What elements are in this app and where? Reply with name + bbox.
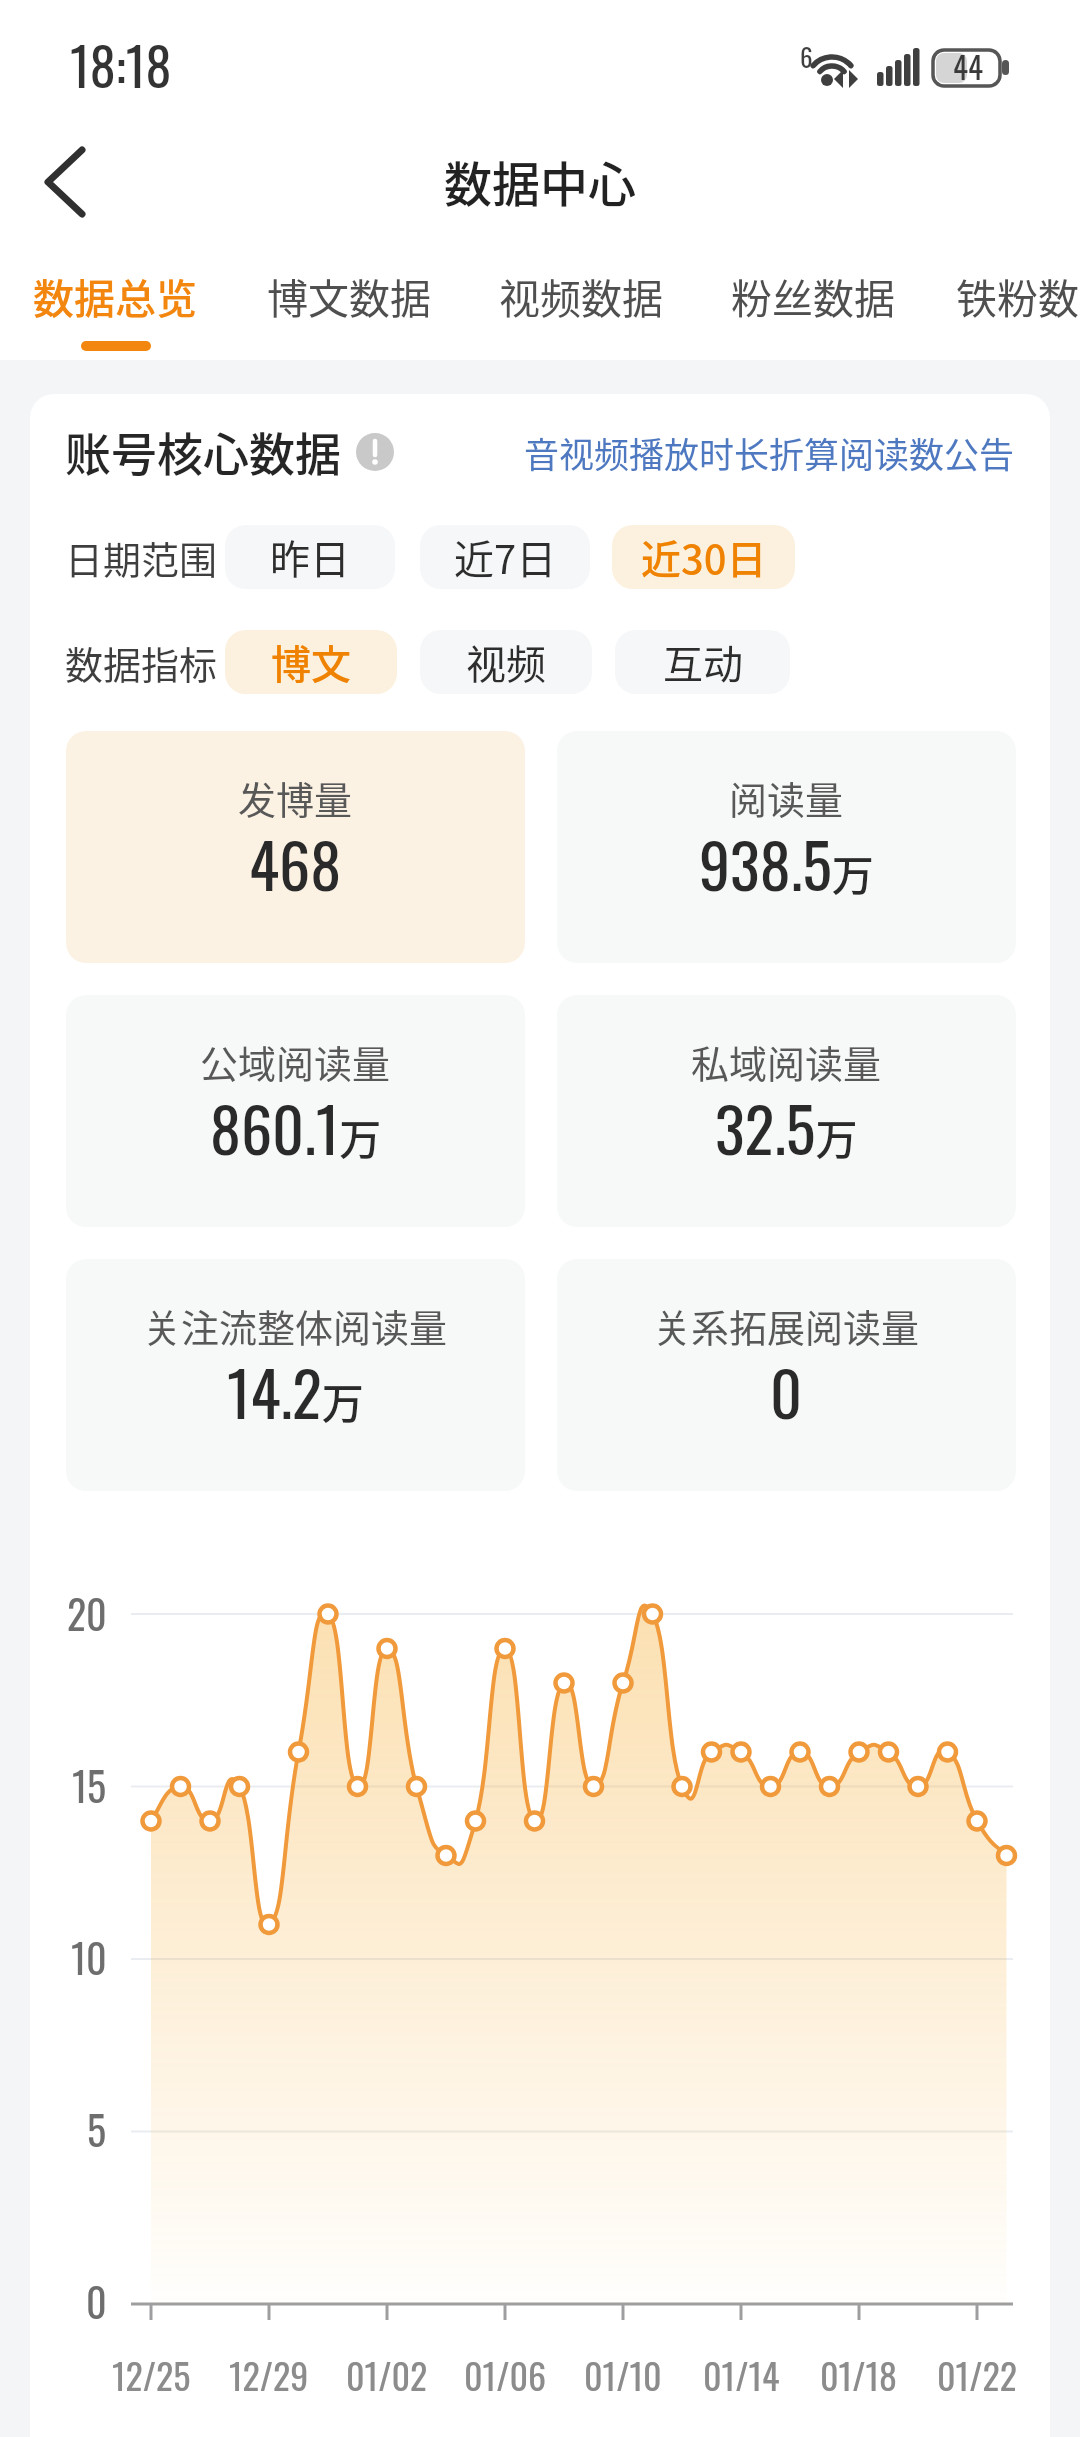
staticText: 01/22 [937,2348,1017,2401]
button[interactable]: 互动 [615,630,790,694]
staticText: 10 [71,1927,107,1986]
staticText: 01/06 [464,2348,547,2401]
staticText: 发博量 [238,770,353,825]
staticText: 博文数据 [267,266,431,325]
staticText: 32.5万 [715,1081,858,1173]
button[interactable] [26,140,110,224]
button[interactable] [66,1259,525,1491]
button[interactable]: 粉丝数据 [731,255,961,335]
button[interactable]: 近7日 [420,525,590,589]
staticText: 12/29 [229,2348,309,2401]
staticText: 01/10 [584,2348,662,2401]
staticText: 01/14 [703,2348,780,2401]
staticText: 6 [800,38,813,68]
staticText: 博文 [271,633,351,691]
staticText: 私域阅读量 [691,1034,882,1089]
staticText: 0 [86,2271,107,2330]
staticText: 数据总览 [33,266,197,325]
button[interactable]: 视频数据 [499,255,729,335]
staticText: 阅读量 [729,770,844,825]
button[interactable]: 博文 [225,630,397,694]
button[interactable] [66,731,525,963]
staticText: 昨日 [270,528,350,586]
staticText: 20 [67,1583,107,1642]
button[interactable]: 音视频播放时长折算阅读数公告 [415,417,1015,487]
staticText: 0 [770,1345,803,1437]
staticText: 12/25 [112,2348,191,2401]
staticText: 938.5万 [699,817,874,909]
staticText: 01/02 [346,2348,428,2401]
staticText: 860.1万 [210,1081,382,1173]
staticText: 公域阅读量 [200,1034,391,1089]
staticText: 15 [72,1755,107,1814]
staticText: 468 [249,817,342,909]
staticText: 14.2万 [227,1345,364,1437]
staticText: 关注流整体阅读量 [143,1298,448,1353]
button[interactable] [66,995,525,1227]
staticText: 44 [953,43,983,89]
staticText: 数据指标 [65,635,218,690]
button[interactable]: 博文数据 [267,255,497,335]
button[interactable] [557,995,1016,1227]
staticText: 音视频播放时长折算阅读数公告 [524,427,1015,478]
staticText: 近7日 [454,528,557,586]
button[interactable]: 昨日 [225,525,395,589]
staticText: 18:18 [70,26,172,103]
button[interactable] [557,731,1016,963]
staticText: 数据中心 [444,146,637,216]
staticText: 互动 [663,633,743,691]
staticText: 铁粉数据 [956,266,1080,325]
staticText: 粉丝数据 [731,266,895,325]
button[interactable]: 视频 [420,630,592,694]
button[interactable] [557,1259,1016,1491]
staticText: 账号核心数据 [65,418,341,485]
staticText: 近30日 [641,528,767,586]
staticText: 关系拓展阅读量 [653,1298,920,1353]
staticText: 视频 [466,633,546,691]
staticText: 日期范围 [65,530,218,585]
button[interactable]: 铁粉数据 [956,255,1080,335]
button[interactable]: 数据总览 [33,255,263,335]
button[interactable]: 近30日 [612,525,795,589]
staticText: 5 [87,2099,107,2158]
staticText: 视频数据 [499,266,663,325]
staticText: 01/18 [820,2348,898,2401]
